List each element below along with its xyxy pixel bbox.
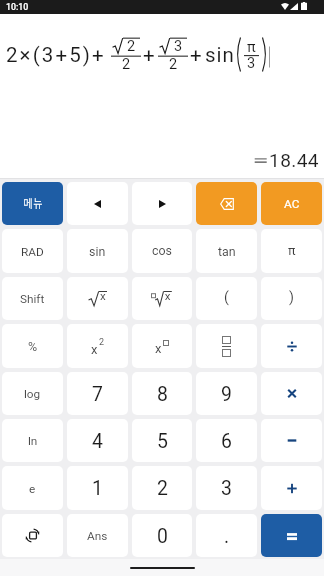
button[interactable]: Ans	[67, 514, 128, 557]
staticText: 1	[92, 477, 103, 500]
button[interactable]: )	[261, 277, 322, 320]
button[interactable]: e	[2, 466, 63, 510]
staticText: 2	[157, 477, 168, 500]
button[interactable]: 0	[132, 514, 192, 557]
button[interactable]: 5	[132, 419, 192, 462]
staticText: x	[155, 341, 162, 356]
staticText: 5	[157, 430, 168, 453]
button[interactable]: 1	[67, 466, 128, 510]
staticText: 2	[99, 337, 105, 348]
button[interactable]: (	[196, 277, 257, 320]
staticText: 3	[174, 38, 183, 55]
staticText: x	[100, 289, 106, 303]
button[interactable]: Move cursor left	[67, 182, 128, 225]
button[interactable]: Divide	[261, 324, 322, 368]
staticText: e	[29, 482, 36, 496]
staticText: 8	[157, 383, 168, 406]
staticText: 3	[247, 55, 256, 72]
button[interactable]: 6	[196, 419, 257, 462]
staticText: Shift	[20, 292, 45, 306]
button[interactable]: Backspace	[196, 182, 257, 225]
staticText: sin	[205, 43, 235, 67]
button[interactable]: .	[196, 514, 257, 557]
button[interactable]: Shift	[2, 277, 63, 320]
button[interactable]: 7	[67, 372, 128, 415]
staticText: 18.44	[269, 149, 319, 171]
staticText: tan	[218, 244, 236, 259]
staticText: Ans	[87, 529, 108, 543]
button[interactable]: Fraction	[196, 324, 257, 368]
button[interactable]: 9	[196, 372, 257, 415]
button[interactable]: Add	[261, 466, 322, 510]
staticText: RAD	[21, 245, 44, 259]
staticText: 2	[169, 56, 178, 73]
button[interactable]: π	[261, 229, 322, 273]
staticText: log	[24, 387, 41, 401]
button[interactable]: Move cursor right	[132, 182, 192, 225]
button[interactable]: AC	[261, 182, 322, 225]
button[interactable]: 2	[132, 466, 192, 510]
button[interactable]: Square root	[67, 277, 128, 320]
staticText: )	[289, 289, 294, 306]
button[interactable]: Equals	[261, 514, 322, 557]
button[interactable]: log	[2, 372, 63, 415]
staticText: 10:10	[6, 2, 29, 12]
button[interactable]: 3	[196, 466, 257, 510]
staticText: ln	[28, 434, 38, 448]
button[interactable]: x squared	[67, 324, 128, 368]
button[interactable]: Multiply	[261, 372, 322, 415]
staticText: %	[28, 339, 38, 354]
staticText: x	[91, 342, 98, 357]
staticText: +	[143, 42, 155, 66]
button[interactable]: %	[2, 324, 63, 368]
button[interactable]: RAD	[2, 229, 63, 273]
staticText: 9	[221, 383, 232, 406]
button[interactable]: cos	[132, 229, 192, 273]
button[interactable]: 메뉴	[2, 182, 63, 225]
button[interactable]: x to the power	[132, 324, 192, 368]
staticText: AC	[284, 197, 300, 211]
button[interactable]: Subtract	[261, 419, 322, 462]
staticText: .	[224, 525, 230, 548]
staticText: π	[288, 243, 296, 258]
staticText: π	[247, 39, 256, 56]
staticText: 0	[157, 525, 168, 548]
staticText: sin	[89, 244, 106, 259]
button[interactable]: ln	[2, 419, 63, 462]
staticText: cos	[152, 243, 172, 258]
staticText: 2×(3+5)+	[6, 43, 106, 67]
staticText: 6	[221, 430, 232, 453]
staticText: 4	[92, 430, 103, 453]
button[interactable]: sin	[67, 229, 128, 273]
button[interactable]: tan	[196, 229, 257, 273]
button[interactable]: N-th root	[132, 277, 192, 320]
staticText: 메뉴	[24, 195, 42, 210]
staticText: x	[165, 289, 171, 303]
staticText: (	[224, 289, 229, 306]
staticText: 2	[127, 38, 136, 55]
staticText: 3	[221, 477, 232, 500]
button[interactable]: Rotate screen	[2, 514, 63, 557]
button[interactable]: 4	[67, 419, 128, 462]
staticText: 2	[122, 56, 131, 73]
button[interactable]: 8	[132, 372, 192, 415]
staticText: +	[190, 42, 202, 66]
staticText: 7	[92, 383, 103, 406]
